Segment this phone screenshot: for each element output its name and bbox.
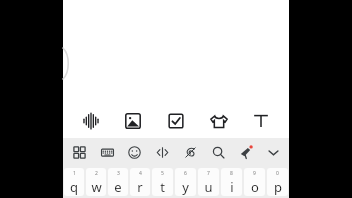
staticText: 6: [184, 170, 187, 177]
staticText: w: [91, 178, 102, 196]
button[interactable]: 4: [130, 168, 150, 196]
staticText: 4: [139, 170, 142, 177]
button[interactable]: Text: [246, 106, 276, 136]
button[interactable]: 7: [198, 168, 219, 196]
button[interactable]: 6: [175, 168, 196, 196]
button[interactable]: Search: [206, 140, 230, 164]
button[interactable]: Emoji: [122, 140, 146, 164]
staticText: 8: [230, 170, 233, 177]
button[interactable]: Clipboard: [67, 140, 91, 164]
button[interactable]: Sticker: [204, 106, 234, 136]
staticText: 9: [253, 170, 256, 177]
staticText: 1: [73, 170, 76, 177]
staticText: y: [182, 178, 189, 196]
staticText: e: [114, 178, 122, 196]
button[interactable]: 9: [244, 168, 265, 196]
staticText: 3: [117, 170, 120, 177]
button[interactable]: GIF: [178, 140, 202, 164]
button[interactable]: 5: [152, 168, 173, 196]
button[interactable]: Stickers: [233, 140, 257, 164]
staticText: p: [274, 178, 282, 196]
staticText: o: [251, 178, 259, 196]
button[interactable]: More: [261, 140, 285, 164]
staticText: t: [160, 178, 165, 196]
staticText: 0: [276, 170, 279, 177]
button[interactable]: Poll: [161, 106, 191, 136]
staticText: q: [70, 178, 78, 196]
button[interactable]: Text editing: [150, 140, 174, 164]
staticText: u: [204, 178, 213, 196]
button[interactable]: 1: [64, 168, 84, 196]
button[interactable]: 2: [86, 168, 106, 196]
staticText: i: [230, 178, 234, 196]
staticText: 5: [161, 170, 164, 177]
button[interactable]: 0: [267, 168, 288, 196]
button[interactable]: 3: [108, 168, 128, 196]
staticText: 2: [95, 170, 98, 177]
staticText: r: [137, 178, 143, 196]
button[interactable]: 8: [221, 168, 242, 196]
staticText: 7: [207, 170, 210, 177]
button[interactable]: Photo: [118, 106, 148, 136]
button[interactable]: Voice message: [76, 106, 106, 136]
button[interactable]: Keyboard layout: [95, 140, 119, 164]
